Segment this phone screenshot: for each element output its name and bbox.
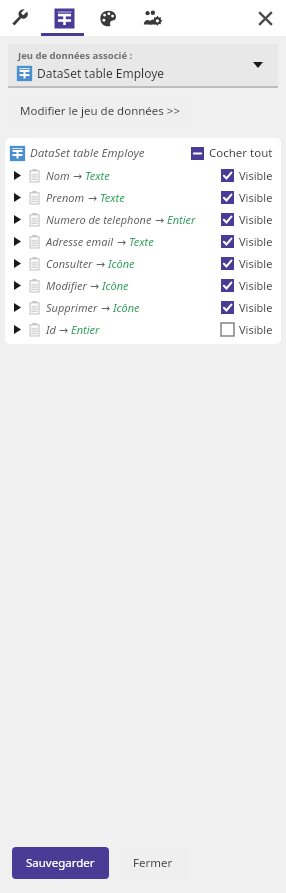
button[interactable]: Cocher tout (191, 145, 281, 161)
button[interactable]: Supprimer (5, 296, 281, 318)
button[interactable]: Adresse email (5, 230, 281, 252)
button[interactable]: Visible (221, 322, 281, 337)
staticText: Entier (71, 322, 100, 337)
staticText: Supprimer (46, 300, 98, 315)
button[interactable]: Fermer (250, 3, 280, 33)
staticText: Jeu de données associé : (18, 49, 133, 62)
staticText: Fermer (133, 855, 173, 871)
button[interactable]: Fermer (119, 847, 187, 879)
staticText: → (98, 300, 113, 315)
staticText: Visible (239, 190, 273, 205)
staticText: Id (46, 322, 56, 337)
button[interactable]: Visible (221, 256, 281, 271)
staticText: Cocher tout (209, 145, 273, 161)
staticText: Texte (100, 190, 125, 205)
staticText: Icône (102, 278, 129, 293)
button[interactable]: Id (5, 318, 281, 340)
staticText: Prenom (46, 190, 85, 205)
staticText: → (93, 256, 108, 271)
staticText: Numero de telephone (46, 212, 152, 227)
button[interactable]: Numero de telephone (5, 208, 281, 230)
staticText: Modifier le jeu de données >> (20, 103, 180, 119)
staticText: Visible (239, 212, 273, 227)
staticText: Visible (239, 168, 273, 183)
staticText: DataSet table Employe (37, 65, 165, 81)
staticText: Icône (113, 300, 140, 315)
staticText: DataSet table Employe (30, 145, 145, 161)
staticText: → (56, 322, 71, 337)
button[interactable]: Propriétés (0, 0, 42, 36)
staticText: Entier (167, 212, 196, 227)
staticText: Modifier (46, 278, 87, 293)
button[interactable]: Visible (221, 212, 281, 227)
button[interactable]: Sauvegarder (12, 847, 109, 879)
staticText: Visible (239, 322, 273, 337)
staticText: → (152, 212, 167, 227)
button[interactable]: Données (42, 0, 86, 36)
staticText: → (114, 234, 129, 249)
staticText: → (70, 168, 85, 183)
button[interactable]: Consulter (5, 252, 281, 274)
button[interactable]: Modifier le jeu de données >> (8, 96, 192, 126)
staticText: Texte (85, 168, 110, 183)
staticText: Visible (239, 278, 273, 293)
staticText: → (87, 278, 102, 293)
staticText: Consulter (46, 256, 93, 271)
staticText: Sauvegarder (26, 855, 95, 871)
button[interactable]: Visible (221, 168, 281, 183)
button[interactable]: Apparence (86, 0, 130, 36)
staticText: Visible (239, 234, 273, 249)
button[interactable]: Prenom (5, 186, 281, 208)
button[interactable]: Visible (221, 278, 281, 293)
staticText: Visible (239, 300, 273, 315)
button[interactable]: Utilisateurs (130, 0, 174, 36)
button[interactable]: Nom (5, 164, 281, 186)
staticText: Icône (108, 256, 135, 271)
staticText: Visible (239, 256, 273, 271)
staticText: Nom (46, 168, 70, 183)
button[interactable]: Modifier (5, 274, 281, 296)
button[interactable]: Visible (221, 300, 281, 315)
staticText: Adresse email (46, 234, 114, 249)
staticText: → (85, 190, 100, 205)
staticText: Texte (129, 234, 154, 249)
button[interactable]: Jeu de données associé : (8, 44, 278, 88)
button[interactable]: Visible (221, 190, 281, 205)
button[interactable]: Visible (221, 234, 281, 249)
